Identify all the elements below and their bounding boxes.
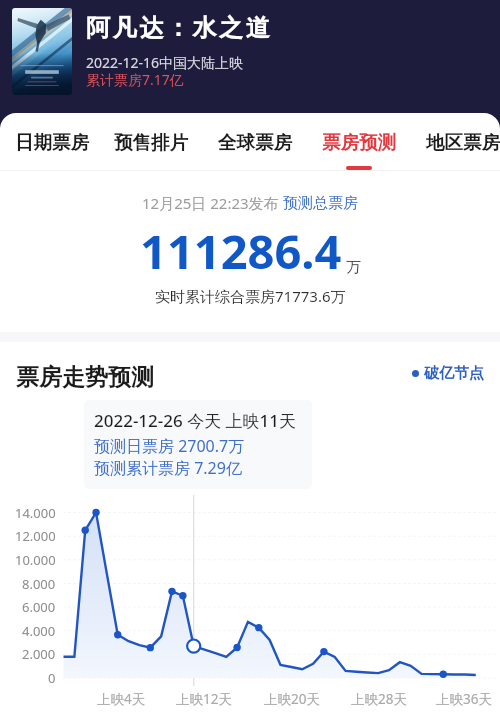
button[interactable]: 预售排片 <box>114 131 188 170</box>
staticText: 4.000 <box>22 622 56 640</box>
staticText: 预测日票房 2700.7万 <box>94 435 245 457</box>
staticText: 阿凡达：水之道 <box>86 13 273 43</box>
staticText: 上映36天 <box>436 690 492 708</box>
button[interactable]: 日期票房 <box>15 131 89 170</box>
staticText: 破亿节点 <box>424 364 484 383</box>
staticText: 全球票房 <box>218 131 292 154</box>
staticText: 上映12天 <box>176 690 232 708</box>
button[interactable]: 全球票房 <box>218 131 292 170</box>
staticText: 6.000 <box>22 598 56 616</box>
staticText: 日期票房 <box>15 131 89 154</box>
staticText: 票房预测 <box>322 131 396 154</box>
staticText: 预测总票房 <box>283 194 358 213</box>
staticText: 12.000 <box>15 527 56 545</box>
staticText: 预测累计票房 7.29亿 <box>94 457 242 479</box>
staticText: 10.000 <box>15 551 56 569</box>
staticText: 上映4天 <box>97 690 146 708</box>
staticText: 地区票房 <box>426 131 500 154</box>
staticText: 8.000 <box>22 575 56 593</box>
staticText: 2022-12-26 今天 上映11天 <box>94 409 296 432</box>
button[interactable]: 地区票房 <box>426 131 500 170</box>
staticText: 票房走势预测 <box>16 363 154 392</box>
staticText: 上映20天 <box>264 690 320 708</box>
staticText: 实时累计综合票房71773.6万 <box>155 286 346 306</box>
staticText: 万 <box>346 258 361 277</box>
staticText: 14.000 <box>15 504 56 522</box>
staticText: 上映28天 <box>351 690 407 708</box>
staticText: 累计票房7.17亿 <box>86 70 184 89</box>
button[interactable]: 破亿节点 <box>412 364 484 383</box>
staticText: 111286.4 <box>140 219 342 283</box>
staticText: 12月25日 22:23发布 <box>142 193 283 213</box>
staticText: 0 <box>48 669 56 687</box>
staticText: 2.000 <box>22 645 56 663</box>
staticText: 2022-12-16中国大陆上映 <box>86 53 244 72</box>
staticText: 预售排片 <box>114 131 188 154</box>
button[interactable]: 票房预测 <box>322 131 396 170</box>
